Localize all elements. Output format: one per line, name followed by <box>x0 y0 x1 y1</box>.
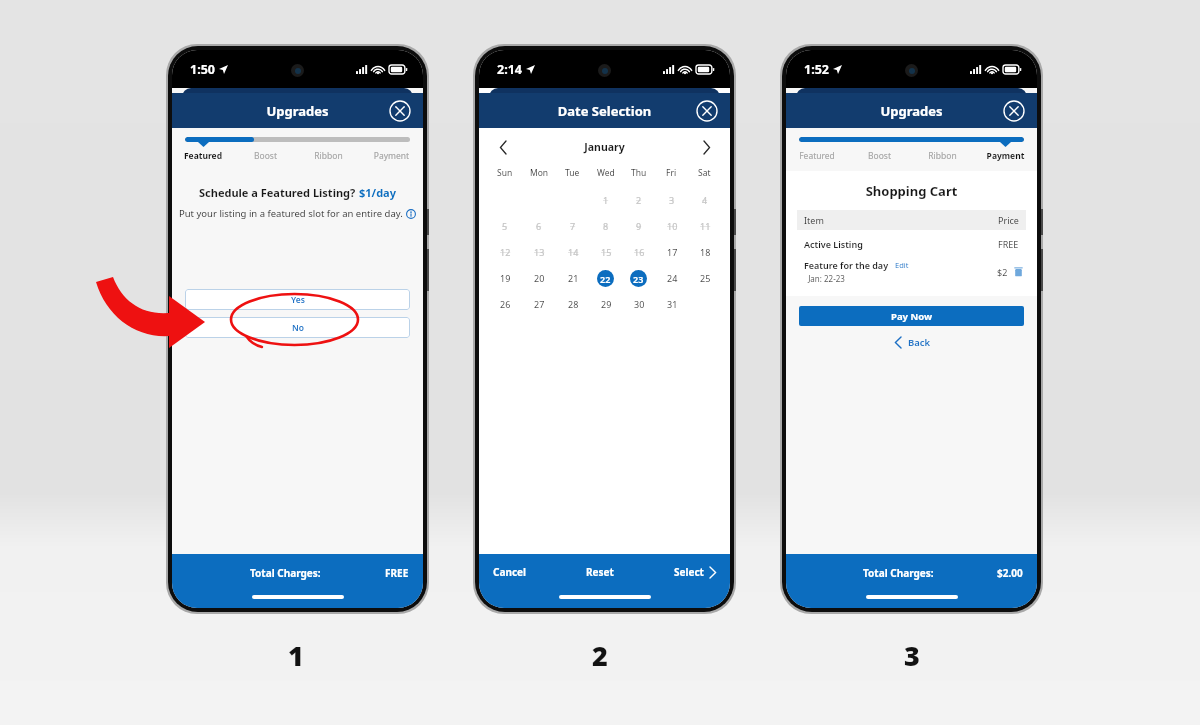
staticText: 17 <box>667 246 678 258</box>
staticText: FREE <box>998 238 1019 250</box>
button[interactable]: Ribbon <box>911 150 974 162</box>
button[interactable]: 10 <box>662 216 682 236</box>
button[interactable]: 14 <box>563 242 583 262</box>
staticText: Upgrades <box>172 102 423 120</box>
button[interactable]: 22 <box>597 270 614 287</box>
staticText: Sat <box>698 167 711 179</box>
staticText: 25 <box>700 272 711 284</box>
button[interactable]: 5 <box>495 216 515 236</box>
button[interactable]: 15 <box>596 242 616 262</box>
button[interactable]: Previous month <box>495 139 511 155</box>
staticText: 15 <box>601 246 612 258</box>
button[interactable]: 2 <box>629 190 649 210</box>
button[interactable]: Ribbon <box>297 150 360 162</box>
button[interactable]: 30 <box>629 294 649 314</box>
button[interactable]: 11 <box>695 216 715 236</box>
button[interactable]: Featured <box>786 150 848 162</box>
button[interactable]: 9 <box>629 216 649 236</box>
staticText: No <box>292 322 304 334</box>
staticText: 21 <box>568 272 579 284</box>
staticText: Payment <box>974 150 1037 162</box>
staticText: 8 <box>603 220 609 232</box>
staticText: 28 <box>568 298 579 310</box>
staticText: 10 <box>667 220 678 232</box>
staticText: 11 <box>700 220 711 232</box>
staticText: 1:50 <box>190 61 215 78</box>
button[interactable]: No <box>185 317 410 338</box>
button[interactable]: 18 <box>695 242 715 262</box>
button[interactable]: 13 <box>529 242 549 262</box>
button[interactable]: 6 <box>529 216 549 236</box>
button[interactable]: Pay Now <box>799 306 1024 326</box>
staticText: 13 <box>534 246 545 258</box>
staticText: 20 <box>534 272 545 284</box>
staticText: Date Selection <box>479 102 730 120</box>
button[interactable]: Delete item <box>1013 266 1024 277</box>
button[interactable]: 29 <box>596 294 616 314</box>
button[interactable]: 8 <box>596 216 616 236</box>
staticText: 30 <box>634 298 645 310</box>
button[interactable]: Back <box>786 336 1037 349</box>
button[interactable]: 7 <box>563 216 583 236</box>
button[interactable]: 25 <box>695 268 715 288</box>
staticText: Cancel <box>493 565 527 579</box>
staticText: Fri <box>666 167 677 179</box>
button[interactable]: Reset <box>586 565 614 579</box>
button[interactable]: Boost <box>234 150 297 162</box>
staticText: Price <box>998 214 1019 226</box>
staticText: Boost <box>234 150 297 162</box>
staticText: 16 <box>634 246 645 258</box>
staticText: Sun <box>497 167 513 179</box>
staticText: Shopping Cart <box>786 182 1037 200</box>
button[interactable]: Next month <box>698 139 714 155</box>
button[interactable]: Cancel <box>493 565 527 579</box>
staticText: Total Charges: <box>863 566 934 580</box>
button[interactable]: 27 <box>529 294 549 314</box>
staticText: 3 <box>887 637 937 674</box>
button[interactable]: 19 <box>495 268 515 288</box>
button[interactable]: Close <box>696 100 718 122</box>
button[interactable]: Close <box>1003 100 1025 122</box>
staticText: 1:52 <box>804 61 829 78</box>
staticText: 12 <box>500 246 511 258</box>
button[interactable]: 16 <box>629 242 649 262</box>
staticText: Select <box>674 565 704 579</box>
button[interactable]: Select <box>674 565 718 579</box>
staticText: Put your listing in a featured slot for … <box>179 207 406 220</box>
button[interactable]: Payment <box>360 150 423 162</box>
button[interactable]: 21 <box>563 268 583 288</box>
button[interactable]: 17 <box>662 242 682 262</box>
staticText: $2.00 <box>997 566 1023 580</box>
button[interactable]: Featured <box>172 150 234 162</box>
button[interactable]: Edit <box>895 260 909 270</box>
button[interactable]: 31 <box>662 294 682 314</box>
button[interactable]: 12 <box>495 242 515 262</box>
staticText: 1 <box>271 637 321 674</box>
staticText: Payment <box>360 150 423 162</box>
staticText: Yes <box>291 294 305 306</box>
button[interactable]: 23 <box>630 270 647 287</box>
staticText: 7 <box>570 220 576 232</box>
button[interactable]: 20 <box>529 268 549 288</box>
staticText: Feature for the day <box>804 259 889 271</box>
staticText: FREE <box>385 566 409 580</box>
staticText: Tue <box>565 167 580 179</box>
button[interactable]: 24 <box>662 268 682 288</box>
button[interactable]: 28 <box>563 294 583 314</box>
staticText: Schedule a Featured Listing? <box>199 185 359 200</box>
button[interactable]: 1 <box>596 190 616 210</box>
button[interactable]: 4 <box>695 190 715 210</box>
button[interactable]: Yes <box>185 289 410 310</box>
button[interactable]: Payment <box>974 150 1037 162</box>
button[interactable]: Boost <box>848 150 911 162</box>
button[interactable]: 3 <box>662 190 682 210</box>
staticText: January <box>511 140 698 154</box>
button[interactable]: Close <box>389 100 411 122</box>
staticText: Ribbon <box>297 150 360 162</box>
staticText: 23 <box>633 273 644 285</box>
staticText: 29 <box>601 298 612 310</box>
staticText: 27 <box>534 298 545 310</box>
staticText: 2:14 <box>497 61 522 78</box>
staticText: 3 <box>669 194 675 206</box>
button[interactable]: 26 <box>495 294 515 314</box>
